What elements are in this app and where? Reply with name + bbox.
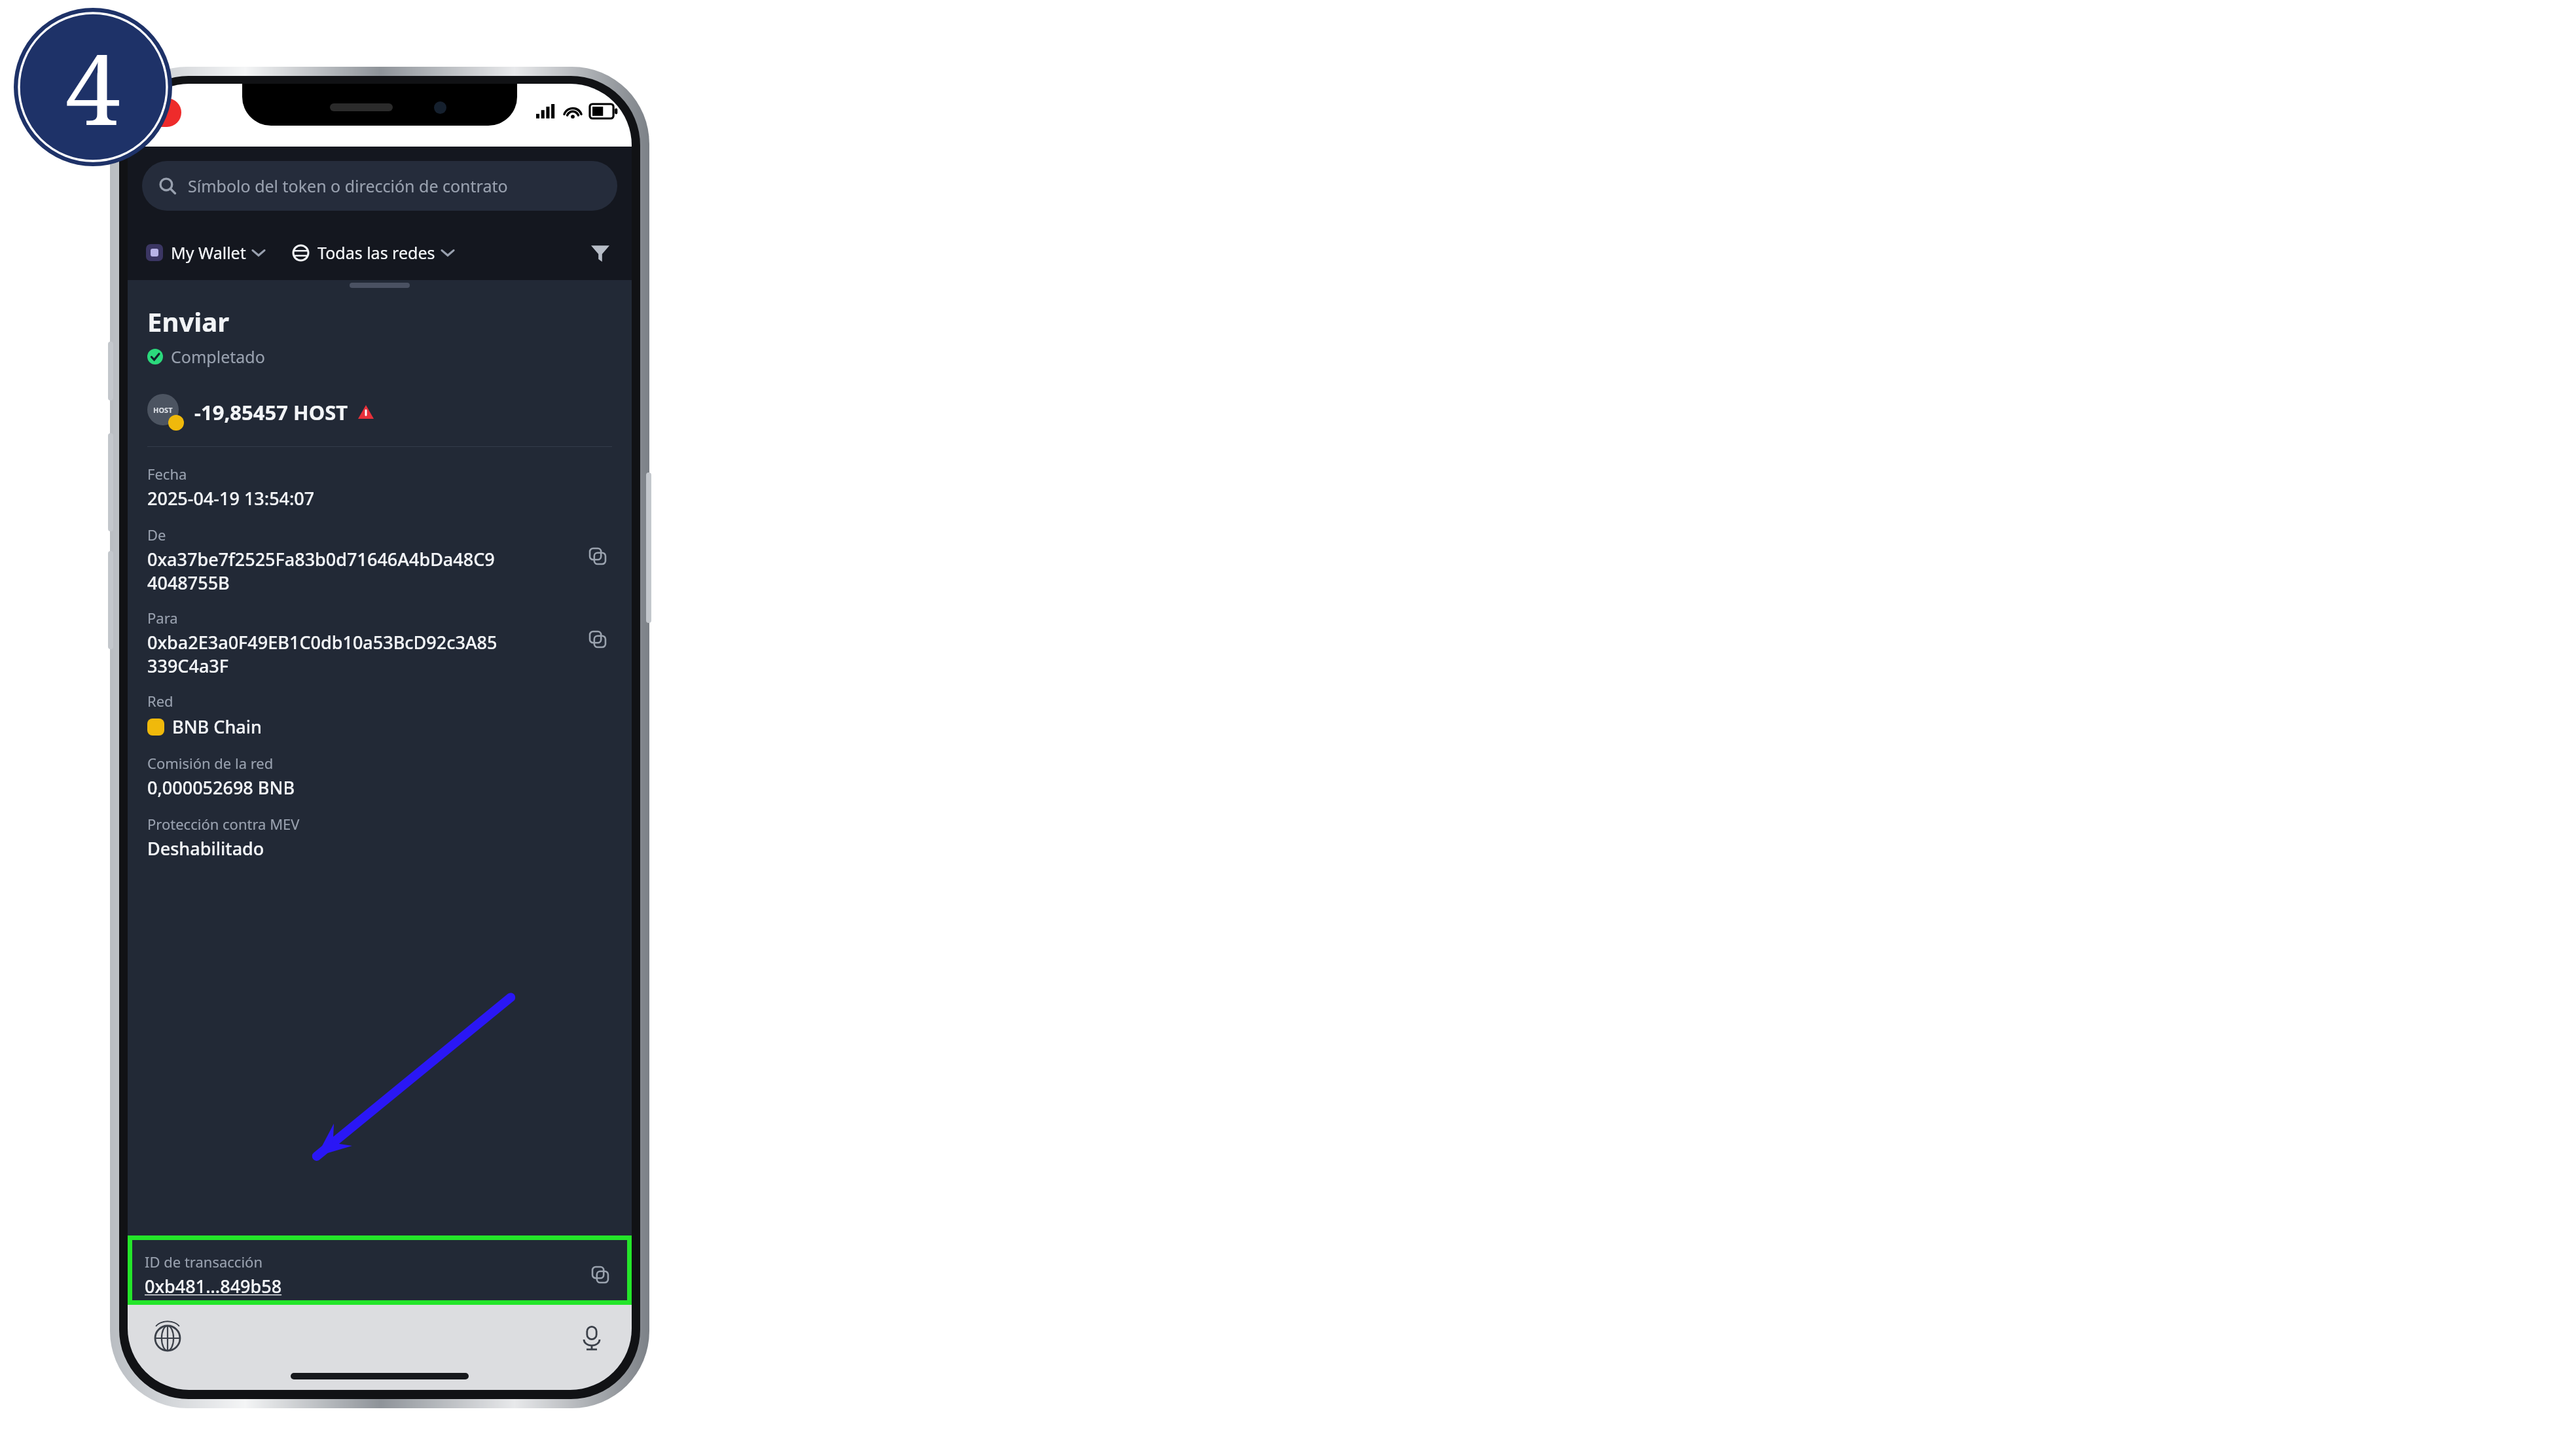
staticText: Todas las redes	[317, 241, 435, 264]
button[interactable]: Change keyboard language	[150, 1321, 185, 1356]
staticText: Completado	[171, 346, 265, 368]
button[interactable]: Voice input	[574, 1321, 609, 1356]
staticText: My Wallet	[171, 241, 246, 264]
staticText: Fecha	[147, 464, 187, 484]
staticText: Para	[147, 608, 178, 628]
staticText: 0,000052698 BNB	[147, 775, 295, 800]
button[interactable]: ID de transacción	[128, 1235, 632, 1305]
staticText: 0xb481...849b58	[145, 1274, 282, 1298]
button[interactable]: Copy	[583, 542, 612, 571]
staticText: 0xa37be7f2525Fa83b0d71646A4bDa48C9 40487…	[147, 547, 495, 595]
button[interactable]: Todas las redes	[289, 239, 456, 266]
staticText: 4	[65, 20, 120, 154]
button[interactable]: Filter	[585, 237, 616, 268]
staticText: 5	[153, 101, 162, 124]
staticText: ID de transacción	[145, 1252, 263, 1271]
staticText: 0xba2E3a0F49EB1C0db10a53BcD92c3A85 339C4…	[147, 630, 497, 678]
staticText: -19,85457 HOST	[194, 399, 348, 426]
button[interactable]: Símbolo del token o dirección de contrat…	[142, 161, 617, 211]
staticText: Símbolo del token o dirección de contrat…	[188, 175, 508, 197]
button[interactable]: My Wallet	[143, 239, 267, 266]
button[interactable]: Copy	[586, 1260, 615, 1289]
staticText: BNB Chain	[172, 715, 262, 739]
button[interactable]: Copy	[583, 625, 612, 654]
staticText: Comisión de la red	[147, 753, 274, 773]
staticText: Deshabilitado	[147, 836, 264, 861]
staticText: De	[147, 525, 166, 544]
staticText: Red	[147, 691, 173, 711]
staticText: 2025-04-19 13:54:07	[147, 486, 315, 510]
staticText: Enviar	[147, 304, 230, 339]
staticText: Protección contra MEV	[147, 814, 300, 834]
staticText: HOST	[153, 405, 173, 415]
